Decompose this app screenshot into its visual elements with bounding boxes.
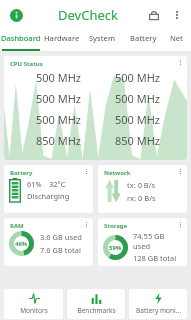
staticText: DevCheck [58,6,118,24]
staticText: Battery [10,169,33,177]
staticText: 850 MHz [36,133,82,148]
staticText: Discharging [27,191,70,201]
button[interactable]: Monitors [4,289,63,319]
staticText: 500 MHz [36,70,82,85]
button[interactable]: More options [168,6,186,24]
staticText: 500 MHz [36,112,82,127]
button[interactable]: Net [164,29,189,51]
staticText: Benchmarks [77,306,116,315]
staticText: 500 MHz [115,91,161,106]
button[interactable]: Battery moni... [129,289,187,319]
staticText: 500 MHz [115,112,161,127]
staticText: System [89,33,116,43]
staticText: 46% [15,240,28,248]
button[interactable]: Hardware [41,29,82,51]
button[interactable]: Battery [4,165,93,213]
staticText: Storage [104,222,128,230]
button[interactable]: Card menu [175,166,186,177]
staticText: 128 GB total [133,253,177,263]
button[interactable]: Dashboard [0,29,41,51]
button[interactable]: Info [7,6,25,24]
staticText: 3.6 GB used [40,232,82,242]
button[interactable]: 500 MHz [4,56,187,160]
staticText: 500 MHz [36,91,82,106]
staticText: 32°C [49,179,66,189]
button[interactable]: Card menu [81,219,92,230]
staticText: 74.55 GB [133,231,165,241]
staticText: 850 MHz [115,133,161,148]
button[interactable]: Lock [145,6,163,24]
staticText: 500 MHz [115,70,161,85]
staticText: Monitors [20,306,48,315]
staticText: Dashboard [1,33,41,43]
button[interactable]: System [82,29,123,51]
button[interactable]: Network [98,165,187,213]
staticText: 61% [27,179,42,189]
staticText: 59% [109,244,122,252]
staticText: rx: 0 B/s [127,193,156,203]
staticText: CPU Status [10,60,43,68]
staticText: Network [104,169,131,177]
button[interactable]: RAM [4,218,93,266]
staticText: tx: 0 B/s [127,180,156,190]
staticText: RAM [10,222,24,230]
staticText: Net [170,33,183,43]
staticText: 7.6 GB total [40,245,81,255]
button[interactable]: Storage [98,218,187,266]
button[interactable]: Battery [123,29,164,51]
button[interactable]: Benchmarks [67,289,125,319]
button[interactable]: Card menu [175,219,186,230]
button[interactable]: Card menu [175,57,186,68]
staticText: Battery [130,33,157,43]
staticText: Hardware [44,33,80,43]
button[interactable]: Card menu [81,166,92,177]
staticText: used [133,241,151,251]
staticText: Battery moni... [136,306,181,315]
